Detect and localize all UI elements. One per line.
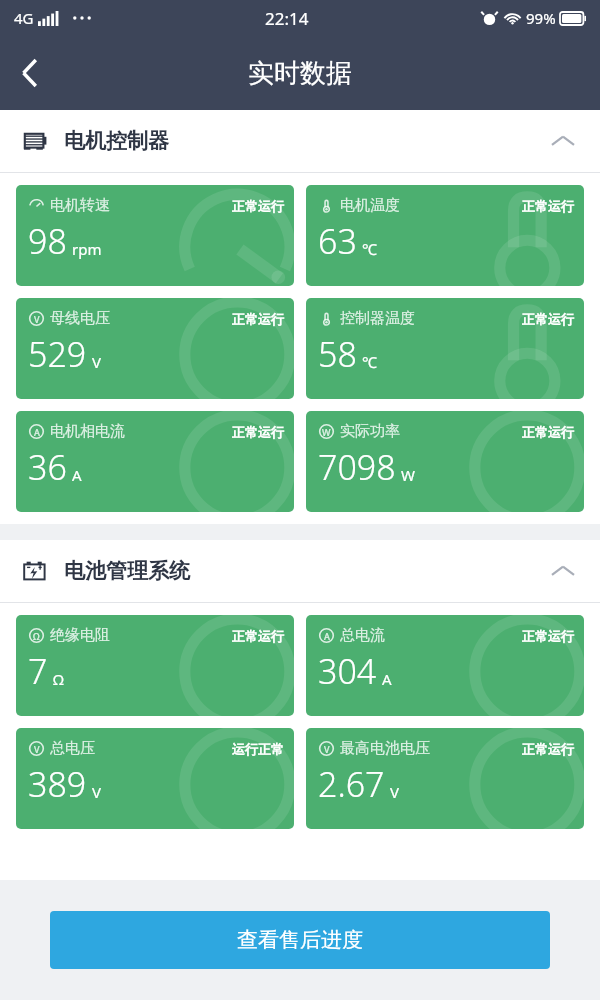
staticText: 正常运行 (522, 311, 574, 327)
staticText: 最高电池电压 (340, 739, 430, 758)
button[interactable]: 电机控制器 (0, 110, 600, 172)
button[interactable]: 电机温度 (306, 185, 584, 286)
staticText: A (72, 465, 82, 485)
staticText: 总电流 (340, 626, 385, 645)
button[interactable]: 电池管理系统 (0, 540, 600, 602)
staticText: A (324, 630, 330, 642)
staticText: 7098 (318, 444, 396, 490)
staticText: 389 (28, 761, 87, 807)
staticText: W (401, 465, 415, 485)
staticText: V (92, 352, 102, 372)
staticText: rpm (72, 239, 102, 259)
staticText: 4G (14, 8, 34, 28)
staticText: 正常运行 (522, 424, 574, 440)
staticText: 电机温度 (340, 196, 400, 215)
staticText: V (92, 782, 102, 802)
staticText: 运行正常 (232, 741, 284, 757)
staticText: 22:14 (265, 7, 309, 30)
staticText: 电池管理系统 (64, 558, 190, 584)
button[interactable]: V (16, 298, 294, 399)
other: Collapse section (546, 124, 580, 158)
staticText: 查看售后进度 (237, 927, 363, 953)
staticText: 实时数据 (248, 57, 352, 90)
staticText: Ω (53, 669, 64, 689)
staticText: 控制器温度 (340, 309, 415, 328)
button[interactable]: A (16, 411, 294, 512)
button[interactable]: V (16, 728, 294, 829)
staticText: ℃ (362, 239, 377, 259)
staticText: V (324, 743, 330, 755)
staticText: 实际功率 (340, 422, 400, 441)
staticText: ℃ (362, 352, 377, 372)
button[interactable]: 电机转速 (16, 185, 294, 286)
staticText: 电机控制器 (64, 128, 169, 154)
staticText: 绝缘电阻 (50, 626, 110, 645)
button[interactable]: Back (0, 44, 58, 102)
button[interactable]: V (306, 728, 584, 829)
staticText: 58 (318, 331, 357, 377)
button[interactable]: 控制器温度 (306, 298, 584, 399)
button[interactable]: A (306, 615, 584, 716)
staticText: V (34, 743, 40, 755)
staticText: 母线电压 (50, 309, 110, 328)
staticText: 电机转速 (50, 196, 110, 215)
button[interactable]: Ω (16, 615, 294, 716)
staticText: 99% (526, 8, 556, 28)
staticText: A (34, 426, 40, 438)
staticText: 529 (28, 331, 87, 377)
staticText: 正常运行 (522, 741, 574, 757)
other: Collapse section (546, 554, 580, 588)
staticText: 正常运行 (232, 424, 284, 440)
staticText: 7 (28, 648, 48, 694)
staticText: 总电压 (50, 739, 95, 758)
staticText: 98 (28, 218, 67, 264)
button[interactable]: 查看售后进度 (50, 911, 550, 969)
staticText: 正常运行 (232, 198, 284, 214)
staticText: V (34, 313, 40, 325)
staticText: 正常运行 (522, 198, 574, 214)
staticText: A (382, 669, 392, 689)
staticText: W (322, 426, 331, 438)
staticText: 2.67 (318, 761, 385, 807)
staticText: 304 (318, 648, 377, 694)
staticText: 正常运行 (522, 628, 574, 644)
staticText: 电机相电流 (50, 422, 125, 441)
staticText: 正常运行 (232, 628, 284, 644)
staticText: 正常运行 (232, 311, 284, 327)
staticText: 36 (28, 444, 67, 490)
button[interactable]: W (306, 411, 584, 512)
staticText: 63 (318, 218, 357, 264)
staticText: Ω (33, 630, 40, 642)
staticText: V (390, 782, 400, 802)
